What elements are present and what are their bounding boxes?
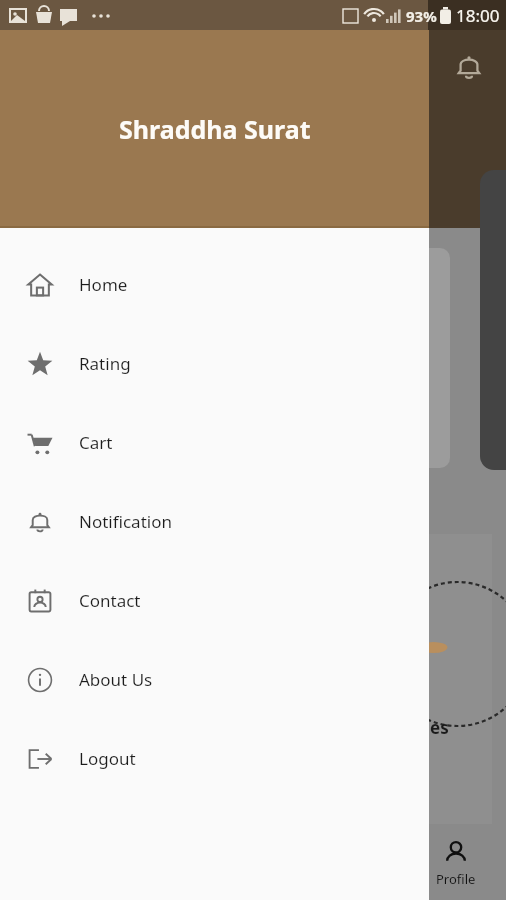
staticText: Rating	[79, 352, 131, 375]
button[interactable]: Contact	[0, 561, 429, 640]
button[interactable]: About Us	[0, 640, 429, 719]
button[interactable]: Rating	[0, 324, 429, 403]
staticText: Cart	[79, 431, 113, 454]
button[interactable]: Profile	[436, 840, 476, 888]
staticText: Profile	[436, 870, 476, 888]
button[interactable]: Notification	[0, 482, 429, 561]
button[interactable]: Logout	[0, 719, 429, 798]
staticText: Notification	[79, 510, 172, 533]
button[interactable]: Home	[0, 245, 429, 324]
staticText: Contact	[79, 589, 141, 612]
staticText: 18:00	[456, 4, 500, 27]
staticText: Home	[79, 273, 128, 296]
button[interactable]: Notifications	[454, 52, 484, 82]
staticText: 93%	[406, 6, 437, 26]
staticText: Shraddha Surat	[119, 112, 311, 146]
staticText: es	[430, 716, 449, 739]
button[interactable]: Cart	[0, 403, 429, 482]
staticText: Logout	[79, 747, 136, 770]
staticText: About Us	[79, 668, 153, 691]
button[interactable]: Shraddha Surat	[0, 30, 429, 228]
